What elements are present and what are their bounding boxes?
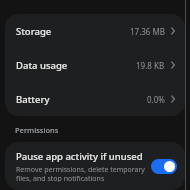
button[interactable]: Pause app activity if unused [5,142,185,190]
staticText: 19.8 KB [136,60,165,71]
staticText: 0.0% [147,94,165,105]
staticText: Permissions [15,125,59,135]
button[interactable]: Storage [5,14,185,48]
button[interactable]: Data usage [5,48,185,82]
staticText: Remove permissions, delete temporary fil… [16,165,145,182]
staticText: Battery [16,93,50,106]
staticText: Data usage [16,59,68,72]
staticText: Storage [16,25,52,38]
button[interactable]: Battery [5,82,185,116]
button[interactable]: Pause app activity if unused toggle [151,159,177,174]
staticText: Pause app activity if unused [16,150,143,163]
staticText: 17.36 MB [130,26,165,37]
